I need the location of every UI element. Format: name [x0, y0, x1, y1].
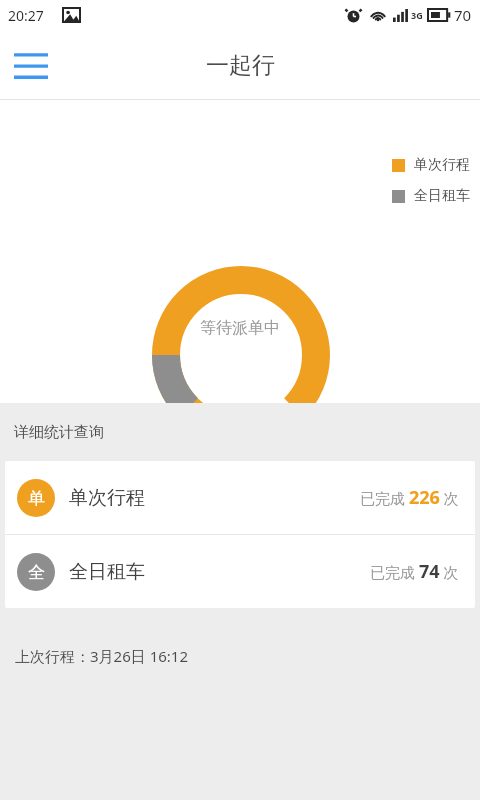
- staticText: 已完成 74 次: [370, 559, 459, 584]
- staticText: 单次行程: [69, 486, 145, 510]
- staticText: 单次行程: [414, 156, 470, 174]
- staticText: 等待派单中: [200, 318, 280, 338]
- staticText: 单: [28, 488, 45, 509]
- staticText: 上次行程：3月26日 16:12: [15, 646, 188, 666]
- staticText: 一起行: [206, 51, 275, 80]
- button[interactable]: 单: [5, 461, 475, 534]
- staticText: 70: [454, 5, 472, 25]
- staticText: 全日租车: [414, 187, 470, 205]
- staticText: 详细统计查询: [14, 423, 104, 442]
- staticText: 3G: [411, 9, 423, 21]
- button[interactable]: 全: [5, 535, 475, 608]
- staticText: 已完成 226 次: [360, 485, 459, 510]
- staticText: 全: [28, 562, 45, 583]
- staticText: 全日租车: [69, 560, 145, 584]
- button[interactable]: Open navigation menu: [6, 40, 56, 90]
- staticText: 20:27: [8, 6, 44, 25]
